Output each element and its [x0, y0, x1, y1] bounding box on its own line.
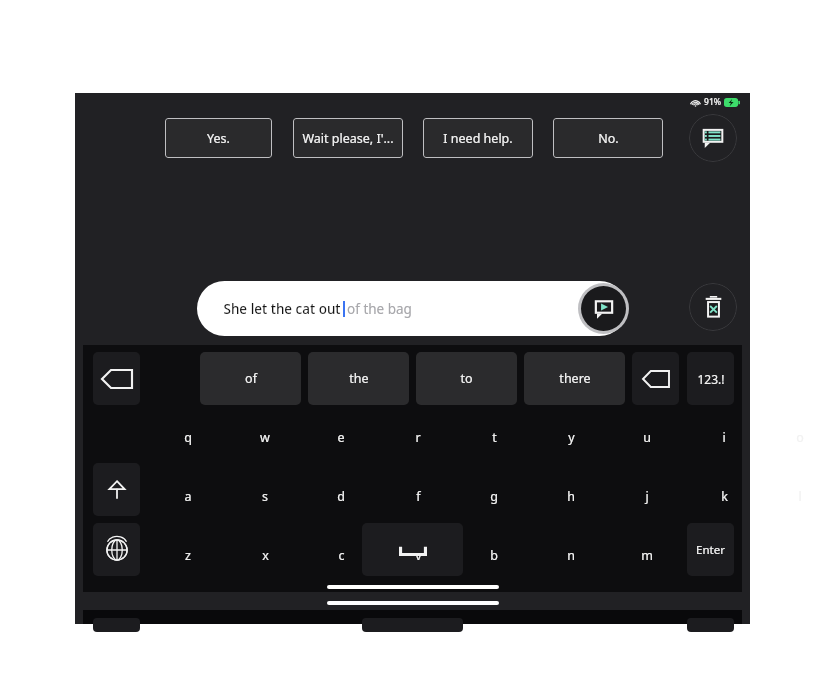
staticText: b — [490, 547, 498, 564]
button[interactable]: g — [467, 476, 521, 516]
staticText: o — [796, 429, 804, 446]
staticText: to — [460, 370, 473, 387]
staticText: h — [567, 488, 575, 505]
staticText: Enter — [696, 542, 725, 558]
staticText: x — [262, 547, 269, 564]
button[interactable]: t — [467, 417, 521, 457]
staticText: w — [260, 429, 270, 446]
button[interactable]: k — [697, 476, 751, 516]
staticText: ' — [723, 547, 726, 564]
button[interactable]: Wait please, I'... — [293, 118, 403, 158]
staticText: z — [185, 547, 191, 564]
staticText: I need help. — [443, 130, 513, 147]
staticText: No. — [598, 130, 619, 147]
button[interactable]: d — [314, 476, 368, 516]
button[interactable]: Language — [93, 523, 140, 576]
button[interactable]: Backspace word — [93, 352, 140, 405]
staticText: j — [645, 488, 649, 505]
button[interactable]: to — [416, 352, 517, 405]
button[interactable]: Enter — [687, 523, 734, 576]
staticText: y — [568, 429, 575, 446]
staticText: m — [641, 547, 653, 564]
staticText: Wait please, I'... — [302, 130, 394, 147]
button[interactable]: I need help. — [423, 118, 533, 158]
staticText: r — [415, 429, 421, 446]
button[interactable]: No. — [553, 118, 663, 158]
button[interactable]: Shift — [93, 463, 140, 516]
staticText: u — [643, 429, 651, 446]
button[interactable]: ' — [697, 535, 751, 575]
button[interactable]: z — [161, 535, 215, 575]
button[interactable]: q — [161, 417, 215, 457]
staticText: l — [798, 488, 802, 505]
button[interactable]: Speak — [581, 286, 626, 331]
button[interactable]: c — [314, 535, 368, 575]
staticText: f — [416, 488, 421, 505]
staticText: k — [721, 488, 728, 505]
button[interactable]: a — [161, 476, 215, 516]
button[interactable]: w — [238, 417, 292, 457]
button[interactable]: of — [200, 352, 301, 405]
button[interactable]: j — [620, 476, 674, 516]
staticText: c — [338, 547, 345, 564]
button[interactable]: x — [238, 535, 292, 575]
button[interactable]: Space — [362, 523, 463, 576]
button[interactable]: v — [391, 535, 445, 575]
button[interactable]: i — [697, 417, 751, 457]
staticText: a — [184, 488, 192, 505]
staticText: of the bag — [347, 300, 412, 318]
button[interactable]: Backspace — [632, 352, 679, 405]
button[interactable]: Clear — [689, 283, 737, 331]
staticText: the — [349, 370, 369, 387]
staticText: 91% — [704, 96, 721, 108]
button[interactable]: r — [391, 417, 445, 457]
staticText: i — [722, 429, 726, 446]
button[interactable]: f — [391, 476, 445, 516]
button[interactable]: n — [544, 535, 598, 575]
staticText: s — [262, 488, 268, 505]
button[interactable]: there — [524, 352, 625, 405]
staticText: 123.! — [697, 371, 725, 387]
button[interactable]: h — [544, 476, 598, 516]
button[interactable]: u — [620, 417, 674, 457]
button[interactable]: She let the cat out — [197, 281, 627, 336]
button[interactable]: s — [238, 476, 292, 516]
button[interactable]: Yes. — [165, 118, 272, 158]
button[interactable]: the — [308, 352, 409, 405]
staticText: q — [184, 429, 192, 446]
staticText: there — [559, 370, 591, 387]
staticText: d — [337, 488, 345, 505]
staticText: t — [492, 429, 497, 446]
button[interactable]: 123.! — [687, 352, 734, 405]
staticText: n — [567, 547, 575, 564]
button[interactable]: b — [467, 535, 521, 575]
staticText: Yes. — [207, 130, 230, 147]
staticText: g — [490, 488, 498, 505]
button[interactable]: y — [544, 417, 598, 457]
button[interactable]: m — [620, 535, 674, 575]
staticText: of — [245, 370, 257, 387]
button[interactable]: e — [314, 417, 368, 457]
staticText: e — [337, 429, 345, 446]
button[interactable]: Messages — [689, 114, 737, 162]
staticText: She let the cat out — [223, 300, 341, 318]
staticText: v — [415, 547, 422, 564]
